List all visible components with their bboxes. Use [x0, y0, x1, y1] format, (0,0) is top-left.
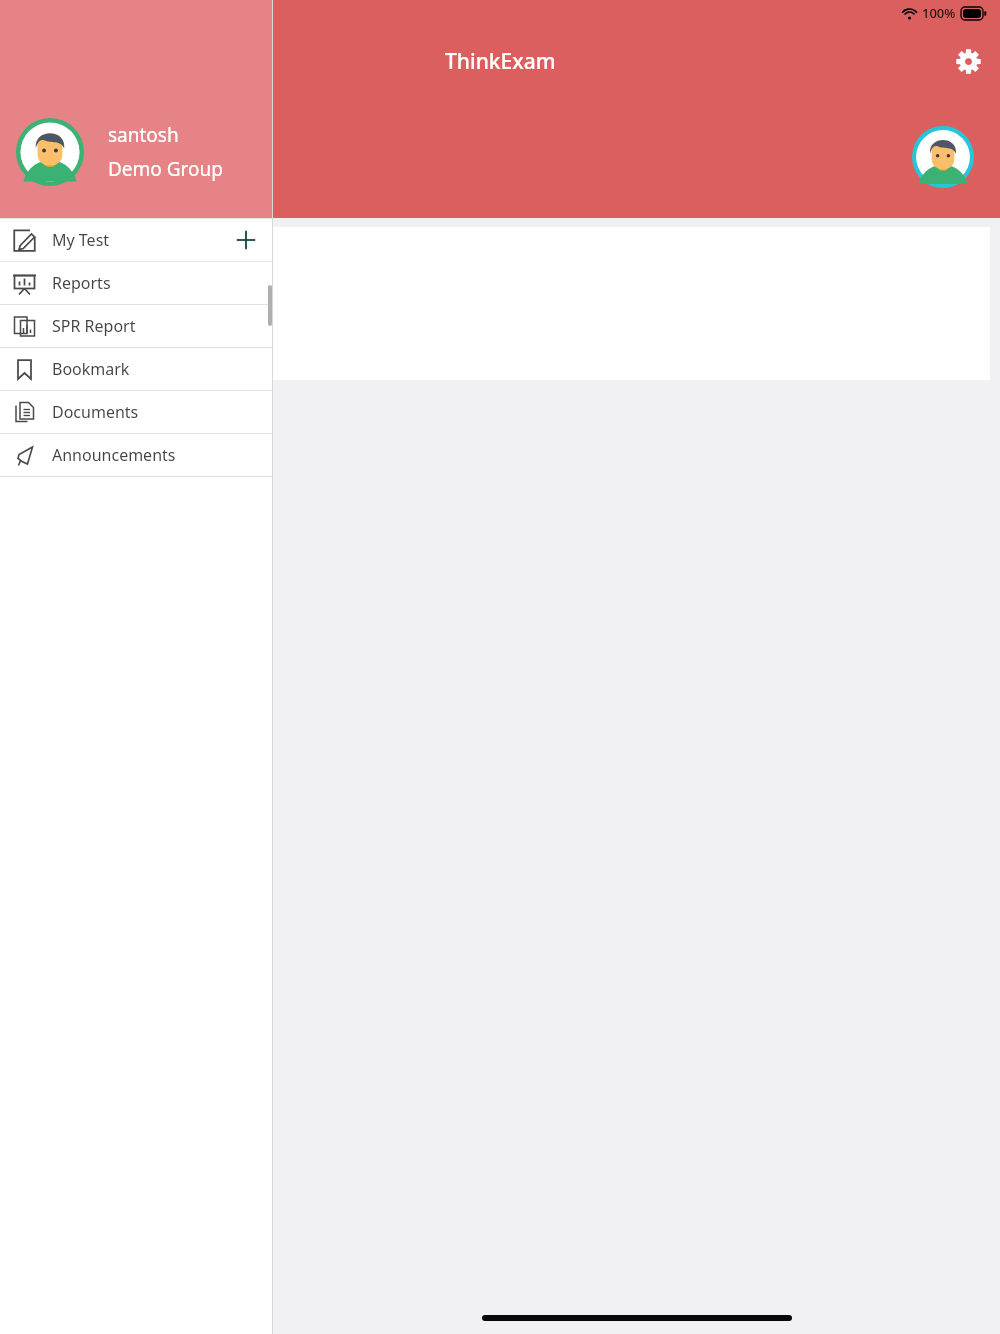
button[interactable]: santosh [0, 0, 273, 218]
staticText: Announcements [52, 444, 273, 466]
button[interactable]: Documents [0, 391, 273, 433]
staticText: santosh [108, 122, 179, 148]
button[interactable]: Settings [946, 39, 990, 83]
staticText: Bookmark [52, 358, 273, 380]
staticText: My Test [52, 229, 235, 251]
button[interactable]: Announcements [0, 434, 273, 476]
button[interactable]: Profile [912, 126, 974, 188]
staticText: SPR Report [52, 315, 273, 337]
staticText: Reports [52, 272, 273, 294]
staticText: Demo Group [108, 156, 224, 182]
staticText: 100% [922, 4, 956, 22]
staticText: ThinkExam [445, 47, 556, 76]
button[interactable]: Reports [0, 262, 273, 304]
button[interactable]: Bookmark [0, 348, 273, 390]
staticText: Documents [52, 401, 273, 423]
button[interactable]: SPR Report [0, 305, 273, 347]
button[interactable]: My Test [0, 219, 273, 261]
